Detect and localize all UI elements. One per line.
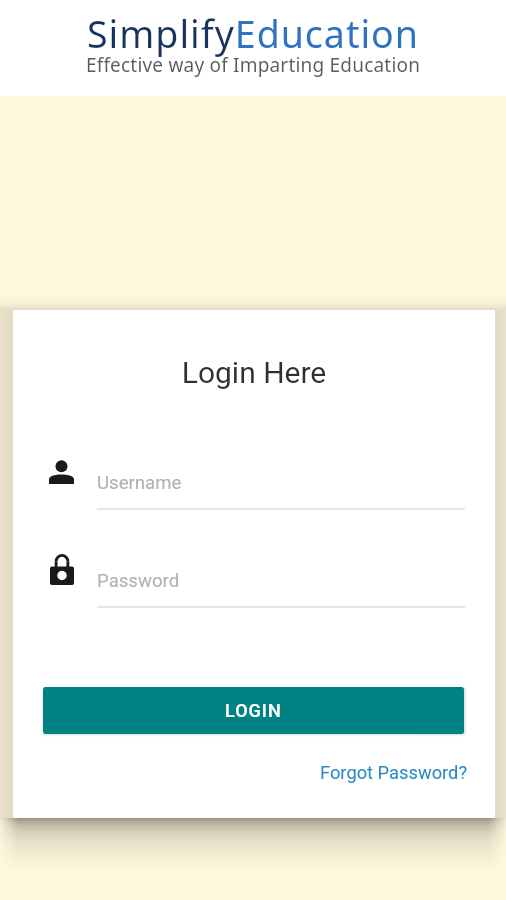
staticText: LOGIN xyxy=(225,700,282,721)
other: Password xyxy=(50,554,74,585)
button[interactable]: Username input field xyxy=(97,461,465,511)
staticText: Effective way of Imparting Education xyxy=(0,52,506,78)
staticText: Forgot Password? xyxy=(320,762,468,783)
button[interactable]: LOGIN xyxy=(43,687,464,734)
button[interactable]: Forgot Password? xyxy=(320,762,468,783)
button[interactable]: Password input field xyxy=(97,559,465,609)
staticText: Username xyxy=(97,472,182,494)
staticText: Password xyxy=(97,570,180,592)
staticText: Login Here xyxy=(13,355,495,390)
other: Username xyxy=(49,460,74,484)
staticText: SimplifyEducation xyxy=(0,8,506,59)
